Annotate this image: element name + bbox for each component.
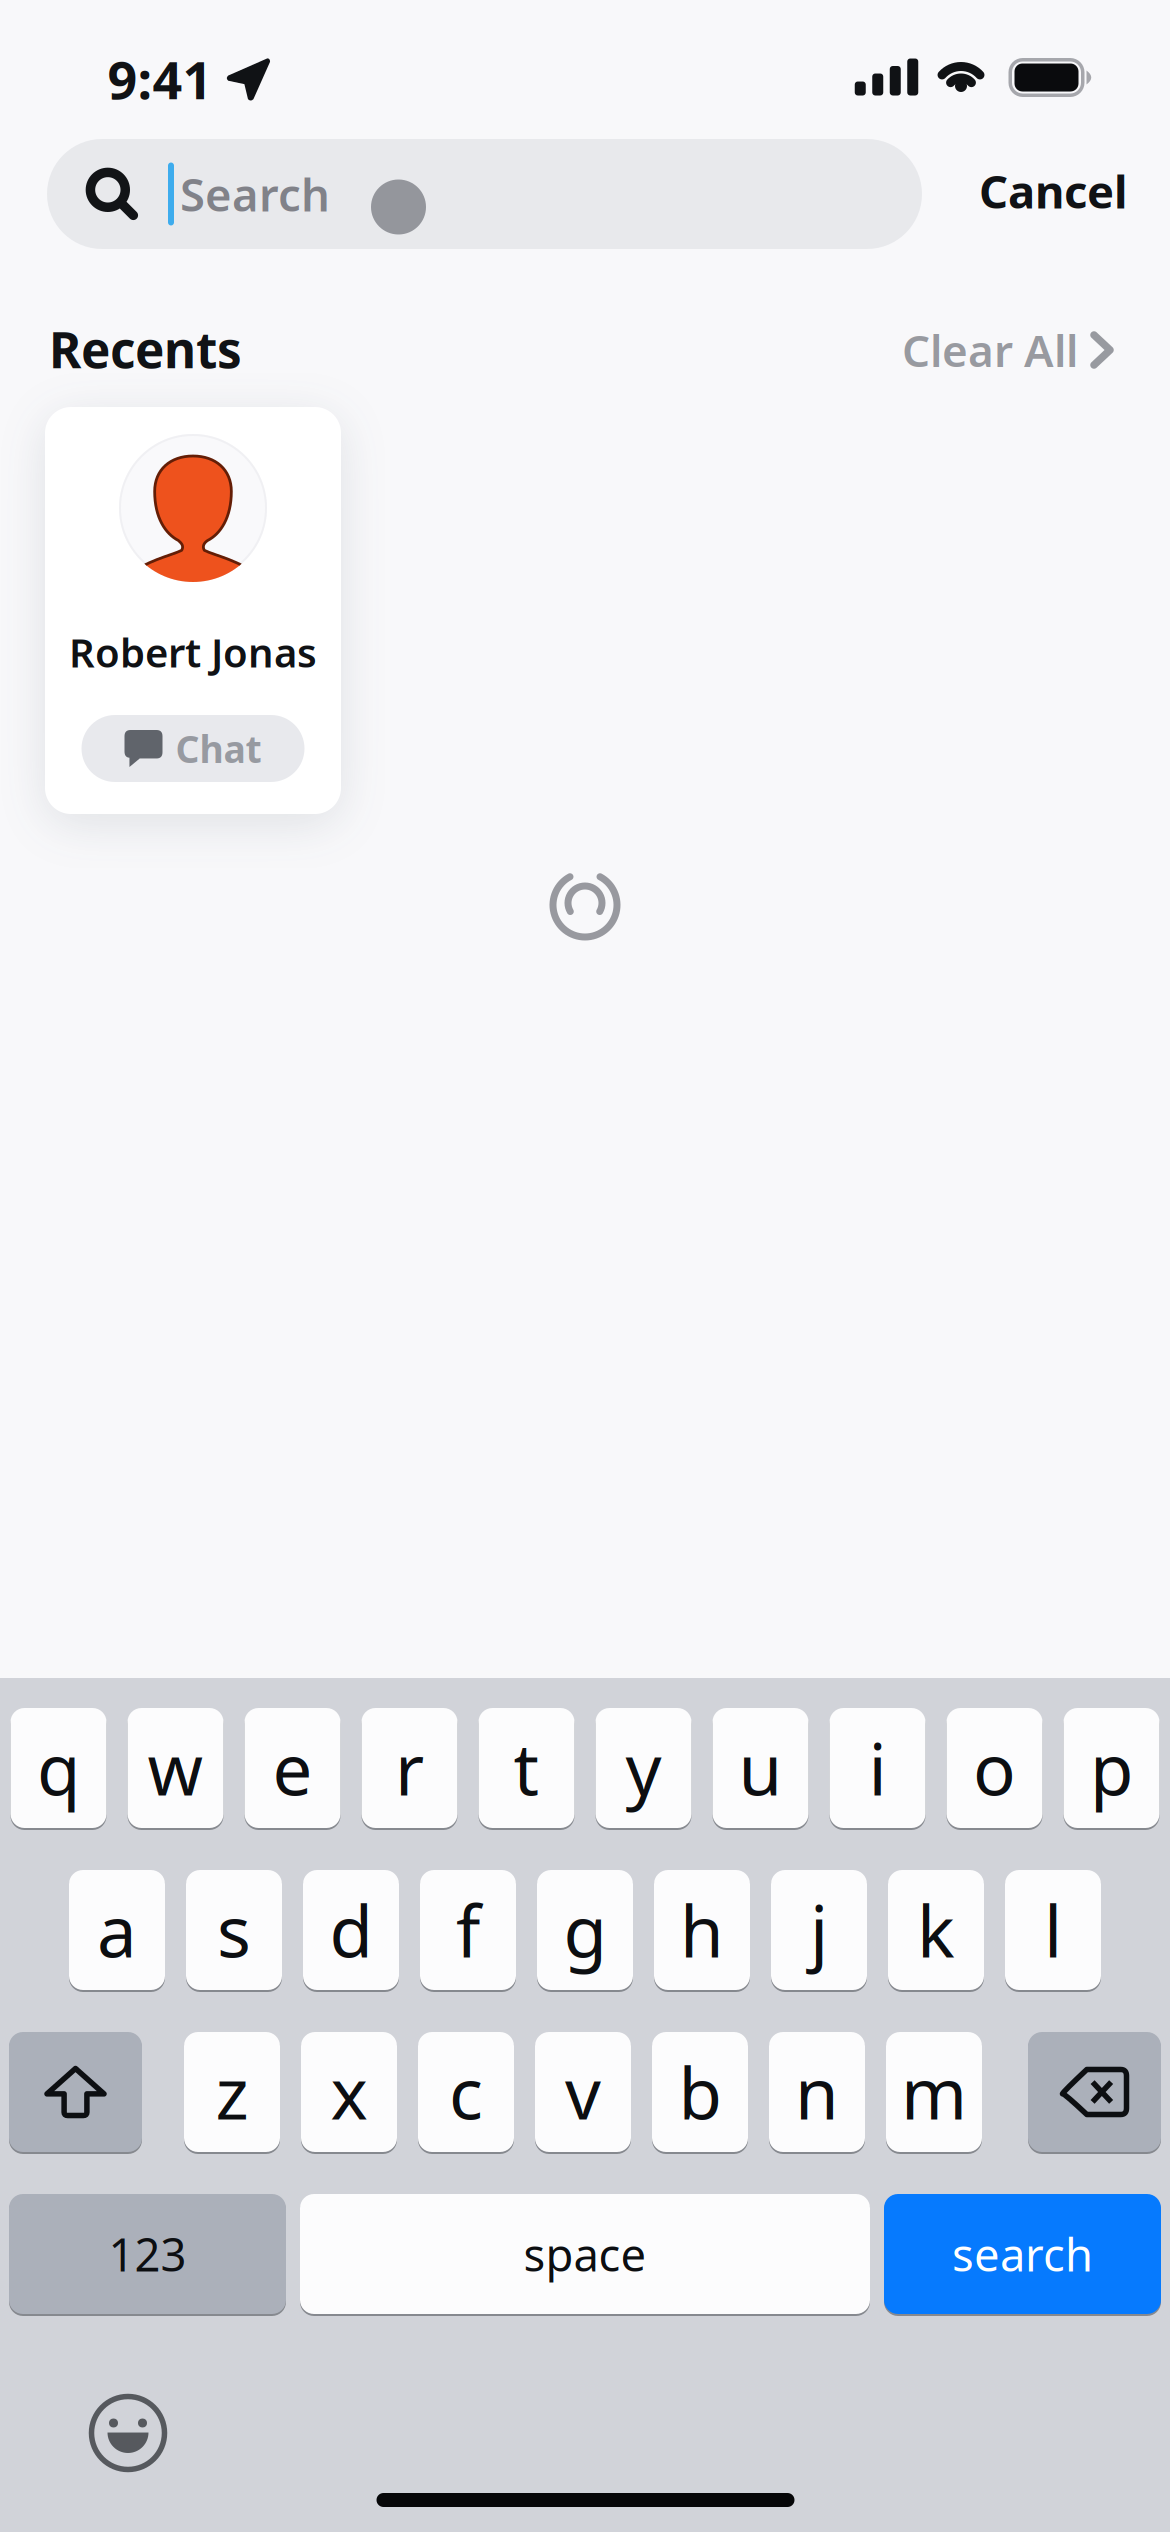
staticText: i [868,1721,886,1815]
staticText: d [329,1883,372,1977]
staticText: 9:41 [107,44,212,114]
staticText: z [215,2045,248,2139]
staticText: x [330,2045,367,2139]
staticText: u [738,1721,782,1815]
staticText: space [523,2224,646,2284]
staticText: Search [180,164,330,224]
staticText: c [449,2045,483,2139]
staticText: p [1090,1721,1133,1815]
staticText: j [810,1883,828,1977]
staticText: f [456,1883,480,1977]
staticText: b [678,2045,721,2139]
staticText: o [973,1721,1016,1815]
staticText: k [917,1883,955,1977]
staticText: g [563,1883,606,1977]
staticText: t [513,1721,539,1815]
staticText: l [1044,1883,1062,1977]
staticText: y [625,1721,661,1815]
staticText: w [147,1721,203,1815]
staticText: Cancel [979,161,1128,221]
staticText: Chat [175,724,261,773]
staticText: s [217,1883,251,1977]
staticText: e [272,1721,312,1815]
staticText: v [565,2045,601,2139]
staticText: a [97,1883,137,1977]
staticText: n [795,2045,839,2139]
staticText: Recents [49,316,242,382]
staticText: m [901,2045,967,2139]
staticText: Robert Jonas [69,625,317,678]
staticText: Clear All [902,321,1078,379]
staticText: r [395,1721,424,1815]
staticText: search [952,2224,1093,2284]
staticText: h [680,1883,724,1977]
staticText: q [37,1721,80,1815]
staticText: 123 [108,2224,186,2284]
